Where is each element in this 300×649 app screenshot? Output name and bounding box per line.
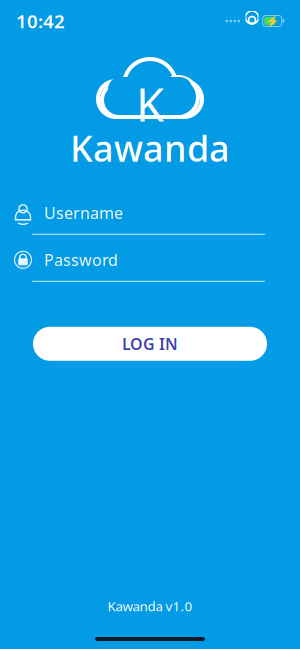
button[interactable]: LOG IN: [33, 327, 267, 361]
staticText: LOG IN: [122, 333, 178, 354]
staticText: Username: [44, 202, 123, 223]
staticText: 10:42: [16, 9, 65, 33]
staticText: Password: [44, 249, 118, 270]
staticText: Kawanda v1.0: [107, 597, 192, 615]
staticText: Kawanda: [70, 124, 230, 172]
staticText: ⚡: [266, 15, 279, 27]
staticText: K: [136, 74, 164, 134]
